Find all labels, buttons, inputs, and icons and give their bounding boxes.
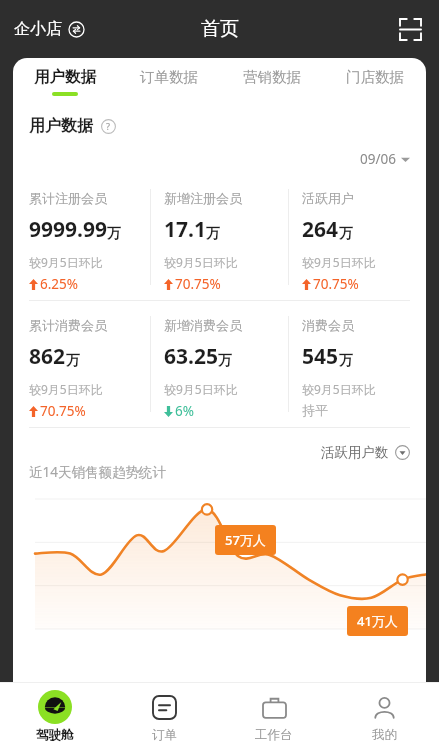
button[interactable]: 活跃用户数	[321, 444, 410, 461]
staticText: 264	[302, 215, 339, 244]
button[interactable]: 新增注册会员	[150, 174, 288, 300]
button[interactable]: 累计注册会员	[13, 174, 150, 300]
staticText: 用户数据	[34, 67, 96, 87]
staticText: 活跃用户	[302, 190, 354, 206]
staticText: 企小店	[14, 19, 62, 39]
staticText: 门店数据	[346, 68, 404, 86]
staticText: 万	[107, 225, 121, 243]
staticText: 工作台	[255, 727, 293, 743]
staticText: 近14天销售额趋势统计	[29, 463, 166, 481]
button[interactable]: 我的	[329, 682, 439, 755]
staticText: 较9月5日环比	[29, 381, 103, 397]
staticText: 首页	[201, 17, 239, 41]
staticText: 新增注册会员	[164, 190, 242, 206]
staticText: 持平	[302, 402, 328, 418]
staticText: 营销数据	[243, 68, 301, 86]
staticText: 订单数据	[140, 68, 198, 86]
staticText: 较9月5日环比	[29, 254, 103, 270]
button[interactable]: 订单	[109, 682, 219, 755]
button[interactable]: 09/06	[360, 150, 410, 168]
staticText: 545	[302, 342, 339, 371]
staticText: 63.25	[164, 342, 218, 371]
staticText: 57万人	[225, 531, 266, 549]
staticText: 万	[206, 225, 220, 243]
button[interactable]: 门店数据	[323, 58, 426, 104]
button[interactable]: 营销数据	[220, 58, 323, 104]
staticText: 较9月5日环比	[164, 381, 238, 397]
button[interactable]: 驾驶舱	[0, 682, 109, 755]
staticText: 万	[66, 352, 80, 370]
staticText: 6.25%	[40, 275, 79, 293]
button[interactable]: Scan	[393, 12, 427, 46]
staticText: 万	[218, 352, 232, 370]
staticText: 70.75%	[313, 275, 359, 293]
staticText: 累计消费会员	[29, 317, 107, 333]
staticText: 41万人	[357, 612, 398, 630]
staticText: 万	[339, 225, 353, 243]
button[interactable]: 累计消费会员	[13, 301, 150, 427]
button[interactable]: 消费会员	[288, 301, 426, 427]
staticText: 较9月5日环比	[302, 381, 376, 397]
staticText: 862	[29, 342, 66, 371]
button[interactable]: 订单数据	[117, 58, 220, 104]
staticText: 新增消费会员	[164, 317, 242, 333]
button[interactable]: 工作台	[219, 682, 329, 755]
button[interactable]: Help	[100, 118, 116, 134]
staticText: 9999.99	[29, 215, 107, 244]
staticText: 较9月5日环比	[164, 254, 238, 270]
button[interactable]: 新增消费会员	[150, 301, 288, 427]
button[interactable]: 活跃用户	[288, 174, 426, 300]
staticText: 70.75%	[175, 275, 221, 293]
staticText: 6%	[175, 402, 194, 420]
staticText: 活跃用户数	[321, 444, 389, 461]
staticText: 较9月5日环比	[302, 254, 376, 270]
button[interactable]: 用户数据	[13, 58, 117, 104]
staticText: 我的	[372, 727, 397, 743]
staticText: 09/06	[360, 150, 396, 168]
staticText: 用户数据	[29, 116, 93, 136]
staticText: 订单	[152, 727, 177, 743]
staticText: 驾驶舱	[36, 727, 74, 743]
button[interactable]: 企小店	[14, 19, 85, 39]
staticText: 累计注册会员	[29, 190, 107, 206]
staticText: 消费会员	[302, 317, 354, 333]
staticText: 17.1	[164, 215, 206, 244]
staticText: ?	[106, 120, 111, 132]
staticText: 万	[339, 352, 353, 370]
staticText: 70.75%	[40, 402, 86, 420]
